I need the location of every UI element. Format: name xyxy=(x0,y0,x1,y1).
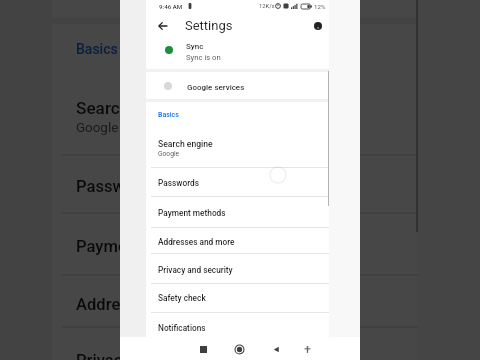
staticText: Payment methods xyxy=(158,208,226,218)
button[interactable] xyxy=(146,40,329,69)
button[interactable]: Passwords xyxy=(146,167,329,196)
staticText: Privacy and security xyxy=(76,350,226,360)
button[interactable]: Addresses and more xyxy=(52,274,418,326)
button[interactable]: Safety check xyxy=(146,283,329,312)
staticText: Sync is on xyxy=(186,53,221,62)
button[interactable] xyxy=(52,0,418,18)
button[interactable]: Privacy and security xyxy=(146,253,329,283)
staticText: 12% xyxy=(314,3,326,10)
button[interactable]: Home xyxy=(231,341,247,357)
staticText: Search engine xyxy=(158,139,213,149)
staticText: Addresses and more xyxy=(76,294,230,314)
staticText: Search engine xyxy=(76,98,186,118)
button[interactable]: Search engine xyxy=(52,76,418,154)
staticText: Addresses and more xyxy=(158,237,235,247)
button[interactable]: Payment methods xyxy=(52,212,418,274)
staticText: Google xyxy=(158,150,180,158)
button[interactable]: Privacy and security xyxy=(52,326,418,360)
button[interactable] xyxy=(146,72,329,99)
button[interactable]: Back xyxy=(268,341,284,357)
staticText: Passwords xyxy=(158,178,199,188)
staticText: Passwords xyxy=(76,176,158,196)
button[interactable]: Payment methods xyxy=(146,196,329,227)
button[interactable]: Accessibility xyxy=(299,341,315,357)
button[interactable]: Search engine xyxy=(146,128,329,167)
staticText: Settings xyxy=(185,18,233,33)
staticText: Safety check xyxy=(158,293,206,303)
staticText: Google services xyxy=(187,83,245,92)
button[interactable]: Notifications xyxy=(146,312,329,337)
button[interactable]: Help xyxy=(309,17,327,35)
staticText: Payment methods xyxy=(76,236,212,256)
staticText: Sync xyxy=(186,42,204,51)
staticText: Google services xyxy=(134,0,250,4)
staticText: Privacy and security xyxy=(158,265,233,275)
button[interactable]: Passwords xyxy=(52,154,418,212)
staticText: Basics xyxy=(76,42,118,58)
button[interactable]: Addresses and more xyxy=(146,227,329,253)
staticText: Google xyxy=(76,120,120,136)
button[interactable]: Recents xyxy=(195,341,211,357)
staticText: 12K/s xyxy=(259,3,275,10)
staticText: 9:46 AM xyxy=(159,3,183,10)
staticText: Notifications xyxy=(158,323,206,333)
button[interactable]: Back xyxy=(154,17,172,35)
staticText: Basics xyxy=(158,111,179,119)
